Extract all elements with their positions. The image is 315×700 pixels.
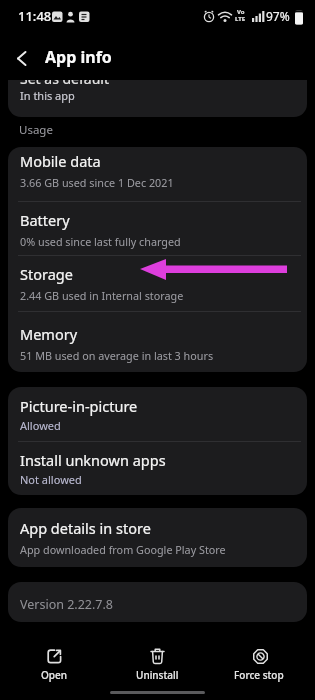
staticText: Usage — [19, 122, 53, 138]
staticText: Uninstall — [136, 668, 179, 682]
staticText: LTE — [235, 15, 246, 23]
staticText: App downloaded from Google Play Store — [20, 542, 226, 557]
staticText: Open — [41, 668, 68, 682]
staticText: 97% — [266, 8, 290, 24]
staticText: Picture-in-picture — [20, 396, 138, 416]
staticText: Vo — [237, 8, 245, 16]
staticText: In this app — [20, 88, 75, 103]
staticText: Set as default — [20, 80, 109, 88]
staticText: Battery — [20, 210, 70, 230]
staticText: App details in store — [20, 518, 151, 538]
staticText: Install unknown apps — [20, 450, 166, 470]
staticText: Memory — [20, 324, 78, 344]
staticText: 51 MB used on average in last 3 hours — [20, 348, 214, 363]
staticText: Force stop — [234, 668, 284, 682]
staticText: 0% used since last fully charged — [20, 234, 181, 249]
staticText: App info — [45, 46, 112, 68]
staticText: Not allowed — [20, 472, 82, 487]
staticText: 2.44 GB used in Internal storage — [20, 288, 184, 303]
staticText: Mobile data — [20, 151, 101, 171]
staticText: Version 2.22.7.8 — [20, 596, 114, 613]
staticText: 11:48 — [18, 7, 52, 25]
staticText: 3.66 GB used since 1 Dec 2021 — [20, 175, 174, 190]
staticText: Allowed — [20, 418, 61, 433]
staticText: Storage — [20, 264, 73, 284]
